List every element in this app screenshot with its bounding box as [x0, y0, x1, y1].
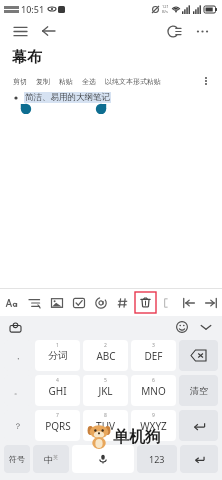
staticText: 剪切 [13, 77, 27, 86]
button[interactable]: 全选 [82, 77, 96, 86]
button[interactable] [180, 445, 218, 473]
button[interactable]: 8 [83, 410, 128, 441]
staticText: B/s [162, 9, 169, 14]
staticText: 121 [162, 4, 169, 9]
button[interactable]: Indent [200, 289, 222, 316]
staticText: ？ [14, 421, 22, 431]
staticText: 英 [53, 454, 58, 460]
button[interactable]: Tag [112, 289, 134, 316]
staticText: 以纯文本形式粘贴 [105, 77, 161, 86]
staticText: 全选 [82, 77, 96, 86]
staticText: 简洁、易用的大纲笔记 [25, 92, 110, 103]
button[interactable]: Mention [90, 289, 112, 316]
button[interactable]: Back [38, 21, 58, 41]
button[interactable]: 以纯文本形式粘贴 [105, 77, 161, 86]
button[interactable]: Checkbox [68, 289, 90, 316]
button[interactable]: Delete [134, 289, 156, 316]
staticText: 幕布 [12, 48, 42, 67]
button[interactable]: 中 [33, 445, 69, 473]
button[interactable]: 9 [131, 410, 176, 441]
button[interactable]: More options [192, 21, 212, 41]
staticText: 8 [104, 412, 107, 419]
staticText: ABC [96, 349, 116, 363]
button[interactable]: More [200, 71, 212, 91]
staticText: 4 [56, 377, 59, 384]
button[interactable] [72, 445, 134, 473]
staticText: 分词 [48, 349, 68, 362]
button[interactable]: ？ [4, 410, 32, 441]
button[interactable]: 7 [35, 410, 80, 441]
button[interactable]: 1 [35, 340, 80, 371]
staticText: 3 [152, 342, 155, 349]
staticText: 9 [152, 412, 155, 419]
staticText: 1 [56, 342, 59, 349]
staticText: 。 [14, 386, 22, 396]
button[interactable]: 符号 [4, 445, 30, 473]
button[interactable]: Menu [10, 21, 30, 41]
staticText: WXYZ [140, 419, 167, 433]
button[interactable]: Outdent [178, 289, 200, 316]
button[interactable]: Emoji [173, 318, 191, 336]
staticText: 5 [104, 377, 107, 384]
staticText: TUV [96, 419, 115, 433]
button[interactable]: Text style [0, 289, 23, 316]
button[interactable]: 复制 [36, 77, 50, 86]
staticText: ， [14, 351, 22, 361]
staticText: 7 [56, 412, 59, 419]
staticText: GHI [48, 384, 67, 398]
button[interactable]: Bracket [156, 289, 178, 316]
button[interactable]: 6 [131, 375, 176, 406]
staticText: JKL [98, 384, 113, 398]
button[interactable] [179, 410, 218, 441]
staticText: 复制 [36, 77, 50, 86]
button[interactable]: Input method settings [7, 319, 23, 335]
staticText: 123 [149, 453, 165, 465]
button[interactable]: Hide keyboard [197, 318, 215, 336]
button[interactable]: Insert image [46, 289, 68, 316]
staticText: 10:51 [21, 3, 45, 15]
button[interactable] [179, 340, 218, 371]
staticText: 2 [104, 342, 107, 349]
staticText: 中 [44, 454, 53, 465]
button[interactable]: Outline [164, 21, 184, 41]
staticText: DEF [144, 349, 163, 363]
button[interactable]: 剪切 [13, 77, 27, 86]
button[interactable]: 2 [83, 340, 128, 371]
button[interactable]: ， [4, 340, 32, 371]
button[interactable]: 粘贴 [59, 77, 73, 86]
button[interactable]: 4 [35, 375, 80, 406]
staticText: PQRS [45, 419, 71, 433]
button[interactable]: 123 [137, 445, 177, 473]
button[interactable]: 3 [131, 340, 176, 371]
staticText: 单机狗 [113, 427, 161, 447]
button[interactable]: 清空 [179, 375, 218, 406]
button[interactable]: Indent list [23, 289, 46, 316]
staticText: 符号 [9, 454, 25, 464]
staticText: 粘贴 [59, 77, 73, 86]
button[interactable]: 5 [83, 375, 128, 406]
staticText: 6 [152, 377, 155, 384]
staticText: MNO [141, 384, 166, 398]
staticText: 清空 [190, 385, 208, 396]
